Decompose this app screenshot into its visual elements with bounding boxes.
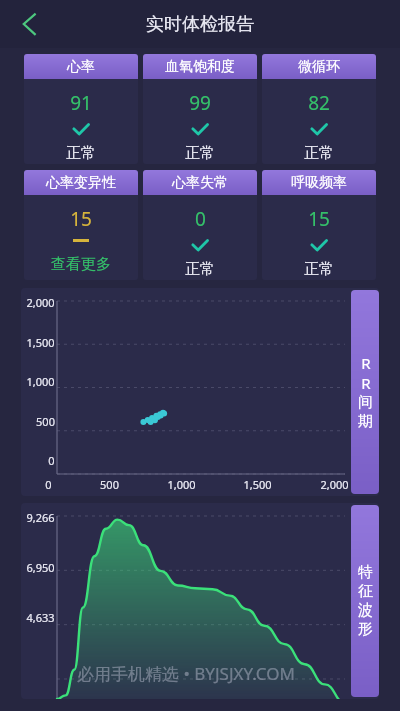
staticText: 实时体检报告 xyxy=(146,13,254,36)
staticText: 征 xyxy=(358,582,373,601)
staticText: 查看更多 xyxy=(51,255,111,274)
button[interactable]: 心率失常 xyxy=(143,170,257,280)
button[interactable]: 心率 xyxy=(24,54,138,164)
button[interactable]: Back xyxy=(8,2,52,46)
button[interactable]: 呼吸频率 xyxy=(262,170,376,280)
staticText: 4,633 xyxy=(26,610,55,625)
staticText: 正常 xyxy=(185,144,215,163)
staticText: 1,500 xyxy=(26,335,55,350)
staticText: 1,500 xyxy=(243,477,272,492)
staticText: 心率 xyxy=(67,58,95,76)
staticText: 期 xyxy=(358,412,373,431)
staticText: 0 xyxy=(48,453,55,468)
staticText: 血氧饱和度 xyxy=(165,58,235,76)
staticText: R xyxy=(361,353,371,373)
button[interactable]: 血氧饱和度 xyxy=(143,54,257,164)
staticText: 呼吸频率 xyxy=(291,174,347,192)
staticText: 0 xyxy=(45,477,52,492)
staticText: 1,000 xyxy=(26,374,55,389)
staticText: 15 xyxy=(308,206,330,232)
button[interactable]: 微循环 xyxy=(262,54,376,164)
staticText: 0 xyxy=(195,206,206,232)
button[interactable]: R xyxy=(351,290,379,494)
staticText: 心率失常 xyxy=(172,174,228,192)
staticText: 6,950 xyxy=(26,560,55,575)
staticText: 波 xyxy=(358,601,373,620)
staticText: 2,000 xyxy=(26,295,55,310)
staticText: 2,000 xyxy=(320,477,349,492)
staticText: 9,266 xyxy=(26,510,55,525)
staticText: 微循环 xyxy=(298,58,340,76)
staticText: 91 xyxy=(70,90,92,116)
staticText: 500 xyxy=(36,414,55,429)
staticText: 间 xyxy=(358,393,373,412)
staticText: 形 xyxy=(358,620,373,639)
staticText: 正常 xyxy=(185,260,215,279)
staticText: 正常 xyxy=(304,260,334,279)
button[interactable]: 特 xyxy=(351,505,379,697)
staticText: 15 xyxy=(70,206,92,232)
staticText: 500 xyxy=(100,477,119,492)
button[interactable]: 心率变异性 xyxy=(24,170,138,280)
staticText: 正常 xyxy=(304,144,334,163)
staticText: R xyxy=(361,373,371,393)
staticText: 正常 xyxy=(66,144,96,163)
staticText: 82 xyxy=(308,90,330,116)
staticText: 1,000 xyxy=(167,477,196,492)
staticText: 特 xyxy=(358,563,373,582)
staticText: 心率变异性 xyxy=(46,174,116,192)
staticText: 99 xyxy=(189,90,211,116)
staticText: 必用手机精选 • BYJSJXY.COM xyxy=(77,662,295,685)
